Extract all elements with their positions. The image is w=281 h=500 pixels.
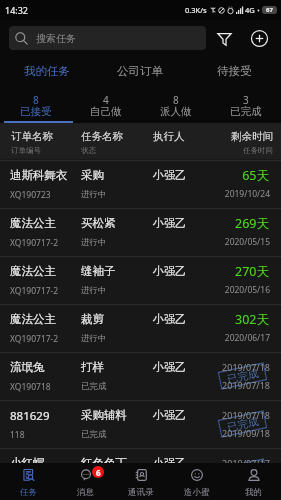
staticText: 已完成 [226,367,260,386]
button[interactable]: 任务 [0,463,57,500]
button[interactable]: 已完成 [0,448,281,463]
staticText: 0.3K/s [185,5,207,15]
staticText: 自己做 [90,105,122,118]
button[interactable]: Filter [211,25,237,51]
staticText: 118 [10,429,25,441]
staticText: 已完成 [81,381,107,392]
staticText: 采购辅料 [81,408,127,422]
button[interactable]: 通讯录 [113,463,169,500]
staticText: 魔法公主 [10,264,56,278]
staticText: 进行中 [81,285,107,296]
staticText: 红色色丁 [81,456,127,463]
button[interactable]: 8 [0,86,71,123]
button[interactable]: 迪斯科舞衣 [0,160,281,208]
button[interactable]: 待接受 [187,56,281,86]
staticText: 我的 [245,487,262,498]
staticText: 状态 [81,146,96,155]
staticText: 执行人 [153,130,185,143]
staticText: 缝袖子 [81,264,116,278]
staticText: 小强乙 [153,168,186,182]
staticText: 小强乙 [153,264,186,278]
staticText: 订单编号 [11,146,41,155]
staticText: 2019/07/18 [172,409,270,421]
staticText: 派人做 [160,105,192,118]
staticText: XQ190718 [10,381,51,393]
staticText: 67 [266,6,273,14]
button[interactable]: 已完成 [0,400,281,448]
button[interactable]: 我的 [225,463,281,500]
staticText: XQ190717-2 [10,333,59,345]
button[interactable]: 已完成 [0,352,281,400]
staticText: 4G [245,5,255,15]
staticText: 2019/07/17 [172,457,270,463]
staticText: 任务时间 [182,146,273,155]
button[interactable]: 魔法公主 [0,208,281,256]
staticText: 进行中 [81,237,107,248]
button[interactable]: 搜索任务 [9,26,206,50]
staticText: 14:32 [5,4,29,16]
staticText: 小强乙 [153,312,186,326]
staticText: 任务名称 [81,130,123,143]
staticText: 小强乙 [153,456,186,463]
button[interactable]: 4 [71,86,141,123]
staticText: 8 [173,93,179,107]
staticText: 进行中 [81,189,107,200]
button[interactable]: 我的任务 [0,56,93,86]
staticText: 65天 [172,167,269,184]
staticText: 迪斯科舞衣 [10,168,68,182]
staticText: 造小蜜 [184,487,210,498]
staticText: 魔法公主 [10,216,56,230]
staticText: 3 [243,93,249,107]
staticText: 任务 [20,487,37,498]
staticText: 待接受 [217,64,252,78]
staticText: 2019/07/18 [172,379,270,391]
staticText: 消息 [77,487,94,498]
staticText: 已完成 [226,461,260,463]
staticText: 裁剪 [81,312,104,326]
staticText: 进行中 [81,333,107,344]
staticText: 我的任务 [24,64,70,78]
staticText: 6 [96,467,101,478]
staticText: 2020/05/16 [172,284,270,296]
staticText: XQ190723 [10,189,51,201]
staticText: 2020/06/17 [172,332,270,344]
staticText: 2019/07/18 [172,361,270,373]
staticText: 已完成 [226,415,260,434]
staticText: 8 [33,93,39,107]
button[interactable]: 3 [211,86,281,123]
staticText: 2020/05/15 [172,236,270,248]
staticText: 2019/10/24 [172,188,270,200]
staticText: 通讯录 [128,487,154,498]
button[interactable]: Add [246,25,272,51]
staticText: 已完成 [230,105,262,118]
button[interactable]: 公司订单 [93,56,187,86]
staticText: 已接受 [20,105,52,118]
staticText: XQ190717-2 [10,237,59,249]
staticText: 269天 [172,215,269,232]
staticText: 剩余时间 [182,130,273,143]
staticText: 2019/09/18 [172,427,270,439]
button[interactable]: 造小蜜 [169,463,225,500]
staticText: XQ190717-2 [10,285,59,297]
staticText: 302天 [172,311,269,328]
staticText: 流氓兔 [10,360,45,374]
staticText: 公司订单 [117,64,163,78]
staticText: 采购 [81,168,104,182]
staticText: 小强乙 [153,408,186,422]
staticText: 订单名称 [11,130,53,143]
staticText: 小红帽 [10,456,45,463]
staticText: 小强乙 [153,216,186,230]
staticText: 小强乙 [153,360,186,374]
staticText: 881629 [10,408,50,424]
button[interactable]: 魔法公主 [0,256,281,304]
staticText: 搜索任务 [36,32,76,45]
button[interactable]: 8 [141,86,211,123]
staticText: 270天 [172,263,269,280]
staticText: 魔法公主 [10,312,56,326]
staticText: 买松紧 [81,216,116,230]
button[interactable]: 魔法公主 [0,304,281,352]
button[interactable]: 6 [57,463,113,500]
staticText: 4 [103,93,109,107]
staticText: 已完成 [81,429,107,440]
staticText: 打样 [81,360,104,374]
